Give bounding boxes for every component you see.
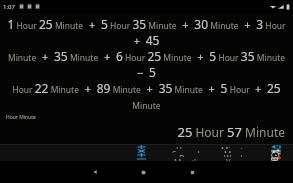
staticText: 1 Hour 25 Minute + 5 Hour 35 Minute + 30… bbox=[4, 16, 289, 48]
button[interactable]: Notes bbox=[258, 157, 293, 161]
staticText: Second bbox=[172, 149, 200, 153]
button[interactable]: Home bbox=[119, 161, 168, 183]
button[interactable]: div bbox=[121, 145, 162, 149]
staticText: Msec bbox=[224, 149, 244, 153]
button[interactable]: Backspace bbox=[258, 145, 293, 149]
staticText: Minute bbox=[221, 145, 248, 149]
button[interactable]: Back bbox=[70, 161, 119, 183]
button[interactable]: Minute bbox=[210, 145, 258, 149]
staticText: Year bbox=[226, 157, 243, 161]
button[interactable]: Month bbox=[162, 157, 210, 161]
button[interactable]: Day bbox=[162, 153, 210, 157]
staticText: 1:07 bbox=[3, 3, 15, 11]
button[interactable]: plus bbox=[121, 153, 162, 157]
staticText: Minute + 35 Minute + 6 Hour 25 Minute + … bbox=[4, 48, 289, 80]
button[interactable]: Tune bbox=[258, 149, 293, 153]
button[interactable]: Second bbox=[162, 149, 210, 153]
staticText: Hour 22 Minute + 89 Minute + 35 Minute +… bbox=[4, 80, 289, 111]
staticText: Month bbox=[174, 157, 199, 161]
button[interactable]: Msec bbox=[210, 149, 258, 153]
button[interactable]: History bbox=[258, 153, 293, 157]
button[interactable]: Hour bbox=[162, 145, 210, 149]
staticText: Week bbox=[224, 153, 245, 157]
button[interactable]: minus bbox=[121, 157, 162, 161]
button[interactable]: Recents bbox=[168, 161, 217, 183]
staticText: Day bbox=[179, 153, 194, 157]
button[interactable]: Year bbox=[210, 157, 258, 161]
button[interactable]: mul bbox=[121, 149, 162, 153]
staticText: Hour Minute bbox=[6, 114, 36, 121]
staticText: Hour bbox=[176, 145, 196, 149]
button[interactable]: Week bbox=[210, 153, 258, 157]
staticText: 25 Hour 57 Minute bbox=[4, 123, 285, 141]
